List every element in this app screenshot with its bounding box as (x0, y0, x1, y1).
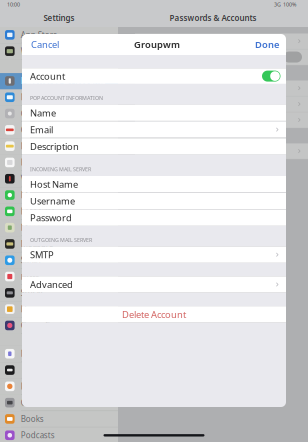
staticText: INCOMING MAIL SERVER (30, 166, 91, 173)
staticText: 10:00 (7, 1, 20, 8)
button[interactable]: Stocks (0, 285, 118, 301)
button[interactable]: Cancel (31, 38, 59, 51)
button[interactable]: Email (22, 121, 286, 138)
staticText: Maps (21, 222, 41, 233)
staticText: Podcasts (21, 430, 55, 440)
button[interactable]: App Store (0, 27, 118, 43)
staticText: Stocks (21, 287, 45, 298)
staticText: Username (30, 195, 75, 207)
button[interactable]: FaceTime (0, 203, 118, 220)
button[interactable]: Mail (0, 89, 118, 106)
button[interactable]: Name (22, 105, 286, 121)
staticText: Description (30, 140, 79, 153)
staticText: Groupwm (134, 38, 180, 51)
button[interactable]: Calendar (0, 122, 118, 138)
button[interactable]: Reminders (0, 155, 118, 171)
button[interactable]: Passwords & Accounts (0, 73, 118, 89)
button[interactable]: Game Center (0, 318, 118, 334)
staticText: Passwords & Accounts (21, 76, 106, 86)
staticText: Game Center (21, 320, 71, 331)
staticText: Mail (21, 92, 36, 102)
staticText: Home (21, 304, 44, 314)
staticText: Advanced (30, 278, 73, 291)
staticText: Password (30, 211, 72, 224)
staticText: OUTGOING MAIL SERVER (30, 236, 92, 243)
staticText: Passwords & Accounts (169, 13, 256, 23)
staticText: Cancel (31, 38, 59, 51)
button[interactable]: Safari (0, 252, 118, 269)
button[interactable]: Home (0, 301, 118, 318)
button[interactable]: Maps (0, 220, 118, 236)
staticText: POP ACCOUNT INFORMATION (30, 94, 103, 101)
button[interactable]: Contacts (0, 106, 118, 122)
button[interactable]: Books (0, 411, 118, 427)
staticText: Measure (21, 239, 54, 249)
button[interactable]: Password (22, 210, 286, 226)
staticText: Settings (43, 13, 74, 23)
button[interactable]: Host Name (22, 176, 286, 192)
button[interactable]: Wallet (0, 43, 118, 60)
staticText: Name (30, 107, 56, 119)
button[interactable]: Photos (0, 378, 118, 395)
staticText: Safari (21, 255, 41, 265)
button[interactable]: News (0, 269, 118, 285)
button[interactable]: Account (22, 68, 286, 84)
staticText: TV (21, 365, 30, 375)
staticText: SMTP (30, 248, 54, 261)
staticText: Delete Account (122, 308, 186, 321)
button[interactable]: Camera (0, 395, 118, 411)
button[interactable]: Advanced (22, 276, 286, 293)
button[interactable]: Podcasts (0, 427, 118, 442)
staticText: Account (30, 70, 65, 82)
button[interactable]: Voice Memos (0, 171, 118, 187)
button[interactable]: Music (0, 346, 118, 362)
button[interactable]: Notes (0, 138, 118, 155)
staticText: Reminders (21, 157, 62, 168)
staticText: Camera (21, 397, 49, 408)
staticText: Calendar (21, 124, 54, 135)
button[interactable]: Username (22, 193, 286, 209)
staticText: Messages (21, 190, 59, 200)
staticText: Email (30, 123, 53, 136)
button[interactable]: Description (22, 138, 286, 154)
button[interactable]: Measure (0, 236, 118, 252)
staticText: 3G 100% (274, 1, 296, 8)
staticText: Photos (21, 381, 48, 392)
button[interactable]: Messages (0, 187, 118, 203)
staticText: Books (21, 414, 44, 424)
staticText: App Store (21, 29, 58, 40)
staticText: FaceTime (21, 206, 56, 217)
staticText: Host Name (30, 178, 78, 190)
button[interactable]: SMTP (22, 247, 286, 263)
staticText: Notes (21, 141, 44, 151)
staticText: Voice Memos (21, 173, 72, 184)
staticText: News (21, 271, 41, 282)
button[interactable]: TV (0, 362, 118, 378)
staticText: Done (255, 38, 279, 51)
staticText: Wallet (21, 46, 44, 56)
staticText: Contacts (21, 108, 54, 119)
button[interactable]: Delete Account (22, 306, 286, 323)
staticText: Music (21, 348, 43, 359)
button[interactable]: Done (255, 38, 279, 51)
